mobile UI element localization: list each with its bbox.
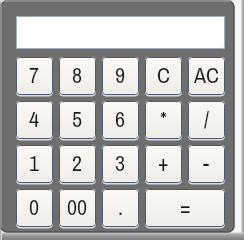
staticText: 00 [67,192,88,222]
staticText: / [204,104,210,134]
staticText: C [157,60,171,90]
button[interactable]: 0 [16,189,53,227]
staticText: 5 [72,104,83,134]
button[interactable]: . [102,189,139,227]
staticText: * [160,104,168,134]
button[interactable]: * [145,101,182,139]
staticText: 2 [72,148,83,178]
button[interactable]: 9 [102,57,139,95]
button[interactable]: C [145,57,182,95]
button[interactable]: + [145,145,182,183]
staticText: = [180,192,191,222]
staticText: 8 [72,60,83,90]
staticText: 7 [29,60,40,90]
button[interactable]: 6 [102,101,139,139]
staticText: . [118,192,124,222]
button[interactable]: 00 [59,189,96,227]
button[interactable]: 7 [16,57,53,95]
button[interactable]: / [188,101,225,139]
button[interactable]: 3 [102,145,139,183]
staticText: 9 [115,60,126,90]
button[interactable]: - [188,145,225,183]
staticText: - [203,148,210,178]
button[interactable]: 5 [59,101,96,139]
staticText: AC [194,60,220,90]
staticText: 4 [29,104,40,134]
button[interactable]: AC [188,57,225,95]
button[interactable]: = [145,189,225,227]
staticText: 0 [29,192,40,222]
staticText: 3 [115,148,126,178]
staticText: 6 [115,104,126,134]
staticText: 1 [29,148,40,178]
staticText: + [158,148,169,178]
button[interactable]: 1 [16,145,53,183]
button[interactable]: 4 [16,101,53,139]
button[interactable]: 2 [59,145,96,183]
button[interactable]: 8 [59,57,96,95]
